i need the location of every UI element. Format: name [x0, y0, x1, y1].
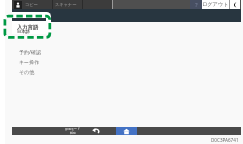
staticText: ログアウト [202, 1, 229, 8]
staticText: 日本語 [17, 29, 30, 34]
staticText: コピー [25, 2, 38, 7]
button[interactable]: キー操作 [12, 57, 51, 67]
staticText: その他 [19, 69, 35, 75]
staticText: 解除 [70, 131, 76, 135]
staticText: 予約/確認 [19, 49, 41, 56]
button[interactable]: Help [190, 0, 203, 9]
button[interactable]: コピー [12, 0, 52, 9]
button[interactable]: 予約/確認 [12, 47, 51, 57]
button[interactable]: Energy saver [63, 127, 82, 135]
button[interactable]: ログアウト [202, 0, 229, 9]
button[interactable]: 入力言語 [12, 12, 51, 34]
staticText: 節電モード [65, 127, 81, 131]
button[interactable]: Power [230, 0, 240, 9]
staticText: キー操作 [19, 59, 40, 65]
staticText: 入力言語 [17, 24, 39, 31]
button[interactable]: その他 [12, 67, 51, 77]
button[interactable]: Home [116, 127, 137, 135]
button[interactable]: Back [88, 127, 104, 135]
staticText: スキャナー [55, 2, 77, 7]
staticText: D0C3PA6741 [211, 137, 239, 143]
button[interactable]: スキャナー [53, 0, 82, 9]
staticText: ? [195, 1, 198, 9]
